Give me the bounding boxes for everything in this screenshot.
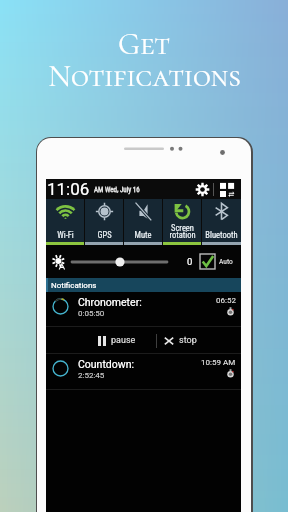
- staticText: 0: [187, 256, 193, 267]
- button[interactable]: Wi-Fi: [46, 199, 84, 245]
- button[interactable]: stop: [157, 327, 241, 354]
- button[interactable]: Screen rotation: [163, 199, 201, 245]
- staticText: Countdown:: [78, 358, 134, 370]
- button[interactable]: Countdown:: [46, 354, 241, 390]
- staticText: AM Wed, July 16: [94, 186, 140, 194]
- button[interactable]: Bluetooth: [202, 199, 241, 245]
- button[interactable]: Chronometer:: [46, 292, 241, 327]
- staticText: Screen rotation: [169, 223, 196, 240]
- button[interactable]: Auto brightness: [200, 254, 215, 269]
- staticText: Notifications: [48, 57, 241, 95]
- button[interactable]: Quick settings: [220, 182, 235, 197]
- staticText: GPS: [97, 230, 112, 240]
- button[interactable]: Brightness: [72, 255, 167, 269]
- staticText: 06:52: [216, 296, 236, 305]
- button[interactable]: Mute: [124, 199, 162, 245]
- button[interactable]: Settings: [195, 182, 210, 197]
- button[interactable]: GPS: [85, 199, 123, 245]
- staticText: 2:52:45: [78, 371, 105, 380]
- staticText: pause: [111, 335, 136, 346]
- staticText: 10:59 AM: [201, 358, 236, 367]
- staticText: Bluetooth: [205, 230, 238, 240]
- staticText: 11:06: [47, 179, 90, 199]
- staticText: Notifications: [51, 281, 97, 290]
- staticText: Get: [118, 25, 170, 63]
- staticText: Chronometer:: [78, 296, 142, 308]
- staticText: 0:05:50: [78, 309, 105, 318]
- staticText: Wi-Fi: [57, 230, 74, 240]
- staticText: stop: [179, 335, 197, 346]
- staticText: Auto: [219, 257, 233, 266]
- button[interactable]: pause: [46, 327, 156, 354]
- staticText: Mute: [134, 230, 152, 240]
